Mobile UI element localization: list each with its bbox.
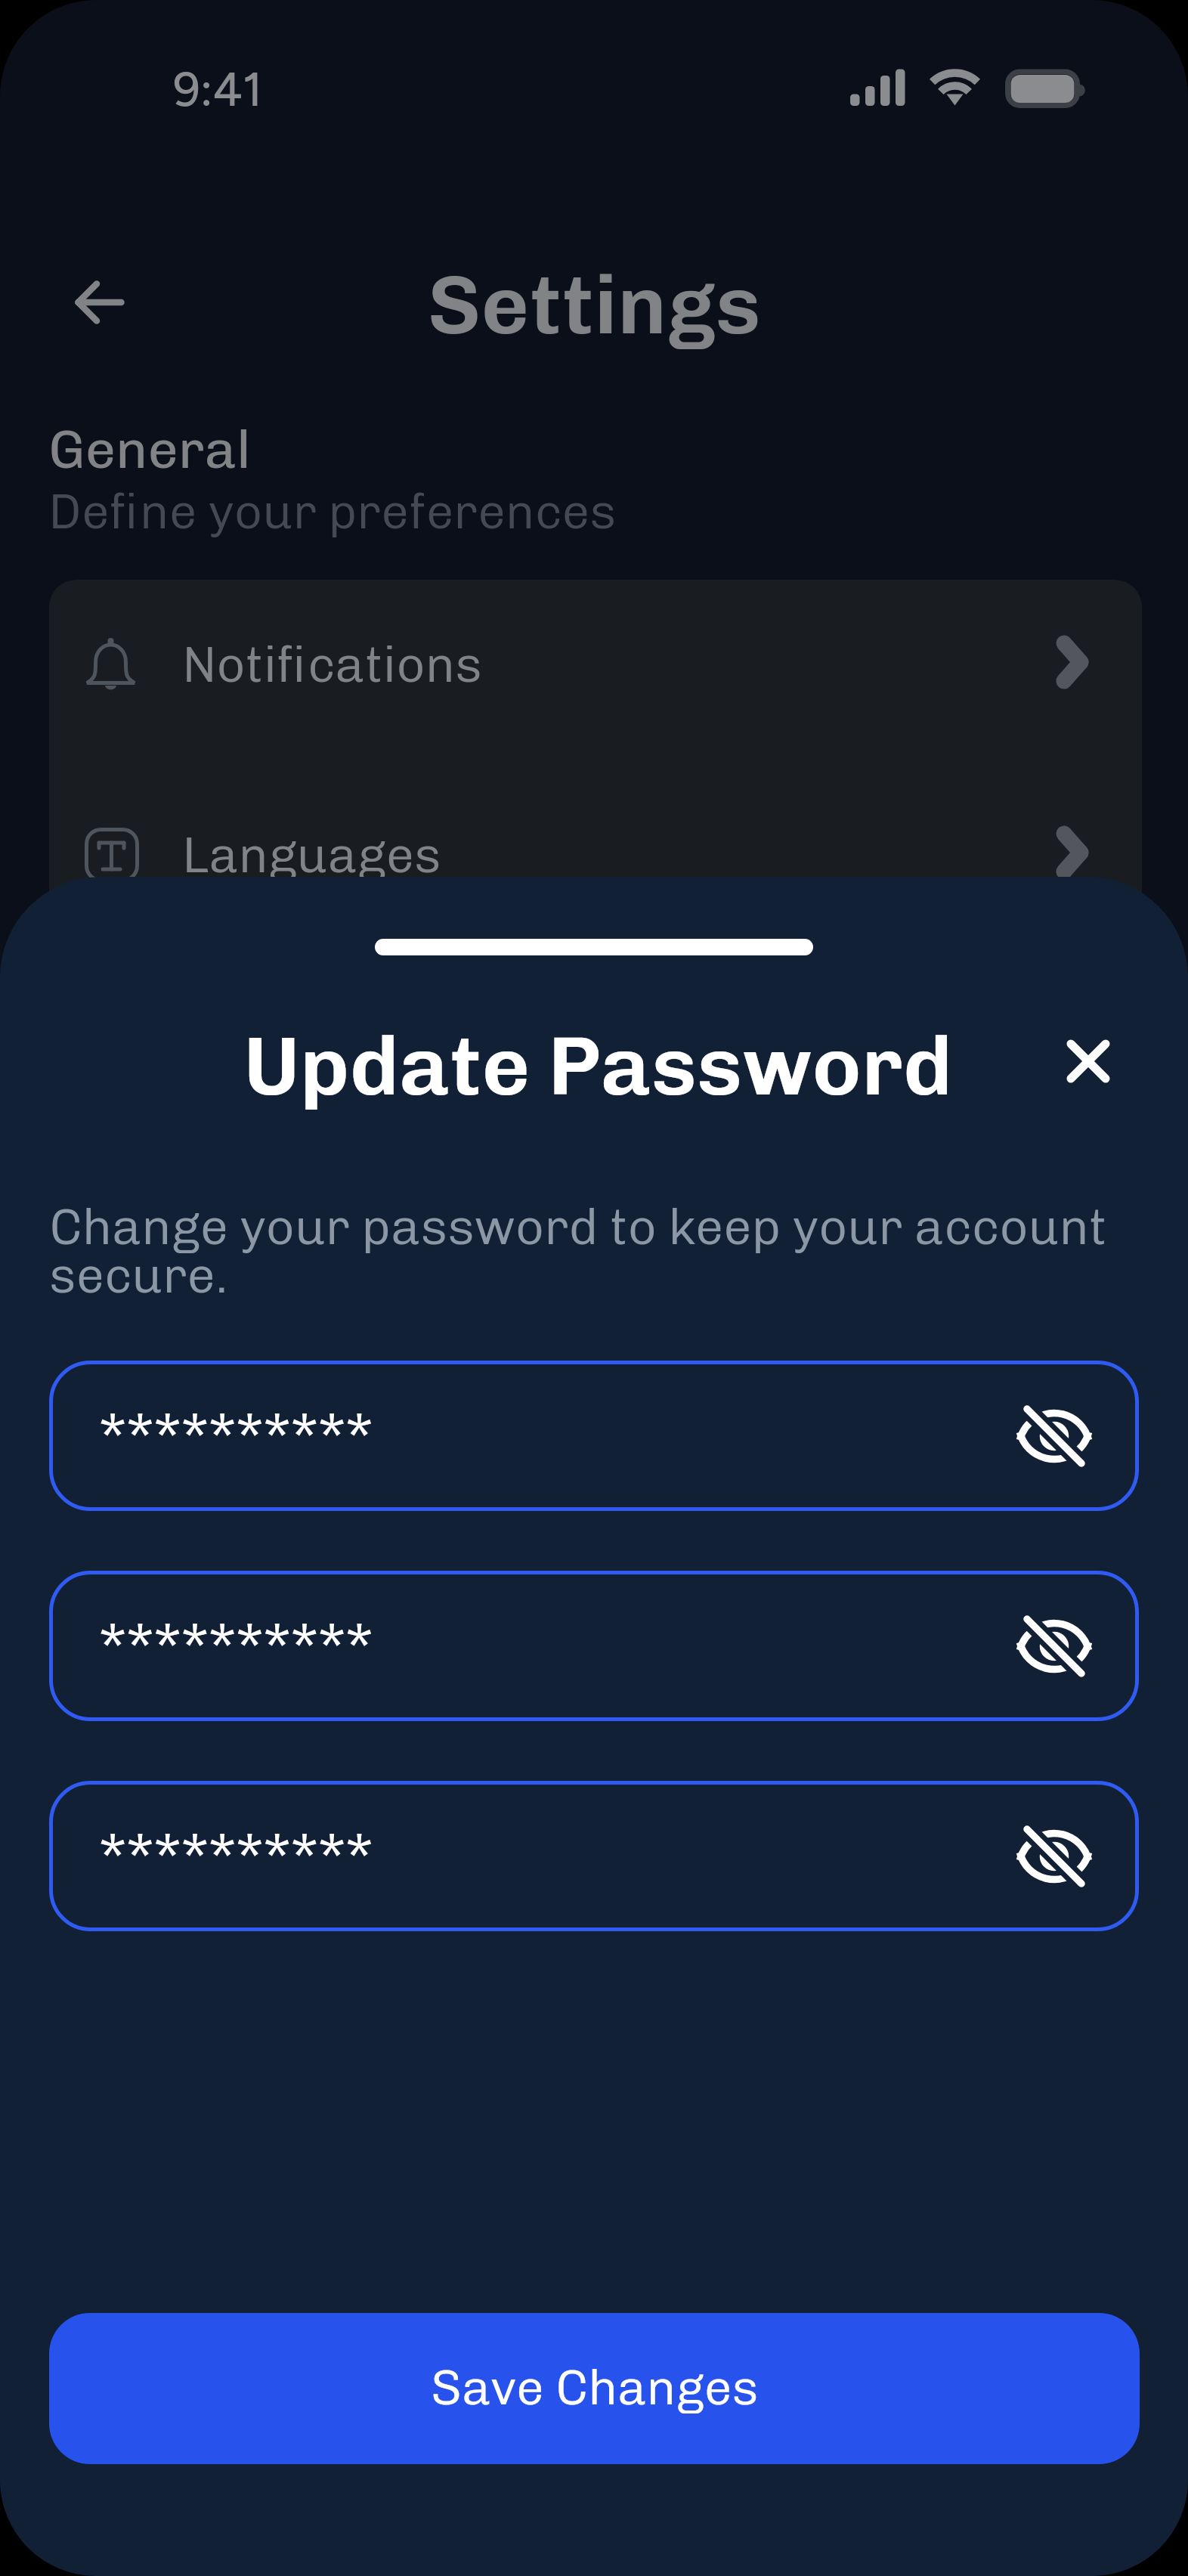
button[interactable]: Show password bbox=[1009, 1601, 1100, 1692]
button[interactable]: Save Changes bbox=[49, 2313, 1140, 2464]
button[interactable]: Notifications bbox=[49, 580, 1142, 742]
staticText: Define your preferences bbox=[48, 482, 617, 540]
staticText: 9:41 bbox=[173, 60, 263, 118]
staticText: Notifications bbox=[182, 635, 482, 695]
staticText: General bbox=[48, 417, 251, 481]
staticText: Change your password to keep your accoun… bbox=[49, 1197, 1122, 1305]
staticText: Update Password bbox=[243, 1017, 953, 1116]
staticText: ********** bbox=[99, 1401, 373, 1469]
button[interactable]: Back bbox=[54, 257, 145, 348]
button[interactable]: ********** bbox=[49, 1571, 1139, 1721]
staticText: Languages bbox=[182, 825, 441, 885]
button[interactable]: ********** bbox=[49, 1781, 1139, 1931]
button[interactable]: Languages bbox=[49, 770, 1142, 933]
staticText: Settings bbox=[428, 255, 761, 355]
staticText: Save Changes bbox=[431, 2358, 759, 2417]
button[interactable]: Show password bbox=[1009, 1811, 1100, 1902]
staticText: ********** bbox=[99, 1822, 373, 1890]
button[interactable]: ********** bbox=[49, 1361, 1139, 1511]
staticText: ********** bbox=[99, 1612, 373, 1680]
button[interactable]: Show password bbox=[1009, 1391, 1100, 1482]
button[interactable]: Close bbox=[1043, 1016, 1134, 1107]
